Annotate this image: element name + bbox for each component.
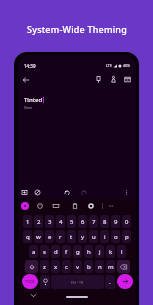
button[interactable]: 6 <box>78 215 87 228</box>
button[interactable]: Undo <box>63 188 72 197</box>
staticText: w <box>36 233 41 241</box>
button[interactable]: s <box>40 245 49 258</box>
button[interactable]: 7 <box>89 215 98 228</box>
staticText: ?123 <box>25 279 35 285</box>
button[interactable]: ?123 <box>22 274 38 289</box>
button[interactable]: Archive <box>123 75 132 84</box>
staticText: u <box>92 233 96 241</box>
button[interactable]: Add <box>20 188 29 197</box>
staticText: r <box>59 233 62 241</box>
staticText: 9 <box>114 218 118 226</box>
staticText: c <box>65 263 68 271</box>
button[interactable]: t <box>67 230 76 243</box>
staticText: e <box>48 233 52 241</box>
staticText: s <box>43 248 46 256</box>
button[interactable]: 4 <box>56 215 65 228</box>
button[interactable]: l <box>117 245 126 258</box>
staticText: Note <box>24 105 33 110</box>
staticText: k <box>109 248 113 256</box>
button[interactable]: Enter <box>117 274 133 289</box>
button[interactable]: Emoji and comma <box>40 275 50 289</box>
staticText: y <box>81 233 85 241</box>
staticText: n <box>98 263 102 271</box>
staticText: q <box>26 233 30 241</box>
button[interactable]: b <box>84 260 93 273</box>
staticText: f <box>65 248 68 256</box>
staticText: d <box>54 248 58 256</box>
button[interactable]: System-Wide Theming <box>27 23 127 35</box>
button[interactable]: c <box>62 260 71 273</box>
button[interactable]: u <box>89 230 98 243</box>
button[interactable]: Assistant <box>21 202 29 210</box>
button[interactable]: 8 <box>100 215 109 228</box>
staticText: Tinted <box>24 96 43 104</box>
button[interactable]: i <box>100 230 109 243</box>
staticText: t <box>70 233 73 241</box>
staticText: . <box>109 278 111 286</box>
button[interactable]: GIF <box>52 202 60 210</box>
staticText: j <box>99 248 101 256</box>
button[interactable]: 9 <box>111 215 120 228</box>
staticText: 4 <box>59 218 63 226</box>
button[interactable]: v <box>73 260 82 273</box>
button[interactable]: Settings <box>87 202 95 210</box>
staticText: p <box>125 233 129 241</box>
button[interactable]: f <box>62 245 71 258</box>
button[interactable]: o <box>111 230 120 243</box>
staticText: m <box>108 263 114 271</box>
staticText: EN • TR <box>71 280 84 285</box>
staticText: i <box>104 233 106 241</box>
staticText: z <box>43 263 46 271</box>
button[interactable]: r <box>56 230 65 243</box>
button[interactable]: 1 <box>23 215 32 228</box>
button[interactable]: Clipboard <box>71 202 79 210</box>
button[interactable]: More options <box>122 188 131 197</box>
staticText: o <box>114 233 118 241</box>
button[interactable]: Stickers <box>36 202 44 210</box>
button[interactable]: Backspace <box>117 260 130 273</box>
button[interactable]: n <box>95 260 104 273</box>
staticText: 5 <box>70 218 74 226</box>
staticText: x <box>54 263 58 271</box>
button[interactable]: y <box>78 230 87 243</box>
button[interactable]: 0 <box>122 215 131 228</box>
button[interactable]: z <box>40 260 49 273</box>
button[interactable]: j <box>95 245 104 258</box>
button[interactable]: 2 <box>34 215 43 228</box>
staticText: a <box>32 248 36 256</box>
staticText: 3 <box>48 218 52 226</box>
button[interactable]: x <box>51 260 60 273</box>
button[interactable]: Space <box>51 275 104 289</box>
staticText: h <box>87 248 91 256</box>
button[interactable]: m <box>106 260 115 273</box>
staticText: b <box>87 263 91 271</box>
button[interactable]: Redo <box>79 188 88 197</box>
staticText: v <box>76 263 80 271</box>
staticText: LTE <box>106 63 112 68</box>
button[interactable]: g <box>73 245 82 258</box>
staticText: 8 <box>103 218 107 226</box>
button[interactable]: . <box>105 275 115 289</box>
button[interactable]: a <box>29 245 38 258</box>
staticText: 2 <box>37 218 41 226</box>
staticText: 6 <box>81 218 85 226</box>
button[interactable]: q <box>23 230 32 243</box>
button[interactable]: 5 <box>67 215 76 228</box>
button[interactable]: Back <box>21 75 31 85</box>
staticText: 7 <box>92 218 96 226</box>
button[interactable]: Pin note <box>94 75 103 84</box>
button[interactable]: h <box>84 245 93 258</box>
button[interactable]: Tinted <box>24 96 44 104</box>
button[interactable]: k <box>106 245 115 258</box>
button[interactable]: e <box>45 230 54 243</box>
button[interactable]: w <box>34 230 43 243</box>
button[interactable]: p <box>122 230 131 243</box>
button[interactable]: More <box>107 202 115 210</box>
button[interactable]: Reminder <box>109 75 118 84</box>
button[interactable]: 3 <box>45 215 54 228</box>
button[interactable]: d <box>51 245 60 258</box>
button[interactable]: Hide keyboard <box>29 291 37 299</box>
button[interactable]: Colour palette <box>33 188 42 197</box>
staticText: 14:39 <box>24 63 36 69</box>
button[interactable]: Shift <box>25 260 38 273</box>
